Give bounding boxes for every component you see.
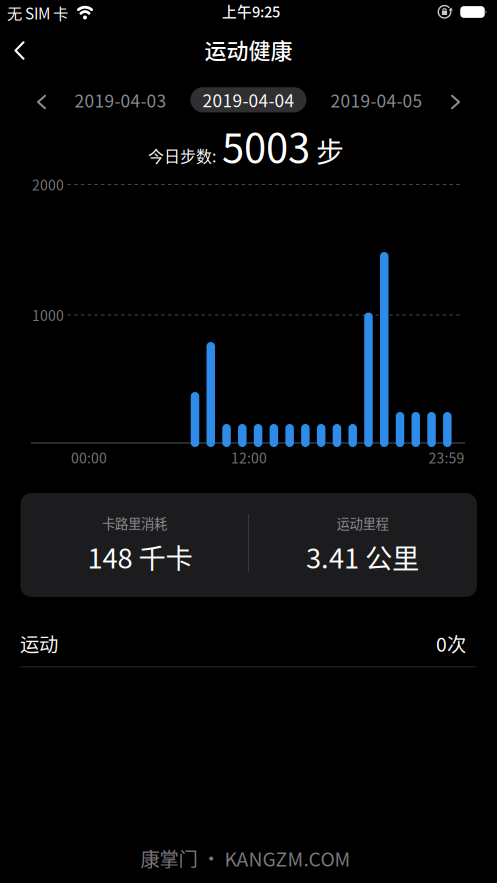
staticText: 康掌门 • KANGZM.COM bbox=[140, 844, 350, 872]
staticText: 2019-04-05 bbox=[330, 87, 422, 113]
staticText: 运动里程 bbox=[336, 513, 388, 533]
button[interactable]: Back bbox=[0, 28, 39, 72]
staticText: 上午9:25 bbox=[222, 0, 280, 22]
staticText: 无 SIM 卡 bbox=[7, 2, 68, 24]
staticText: 3.41 公里 bbox=[306, 537, 419, 576]
button[interactable]: 2019-04-05 bbox=[330, 87, 422, 113]
staticText: 2019-04-04 bbox=[202, 87, 294, 112]
staticText: 0次 bbox=[436, 629, 466, 657]
button[interactable]: Next day bbox=[435, 82, 475, 122]
button[interactable]: 2019-04-04 bbox=[190, 87, 306, 112]
staticText: 2000 bbox=[32, 174, 64, 195]
button[interactable]: 运动 bbox=[20, 621, 466, 665]
staticText: 2019-04-03 bbox=[75, 87, 167, 113]
staticText: 步 bbox=[316, 130, 344, 170]
staticText: 00:00 bbox=[71, 447, 107, 468]
button[interactable]: Previous day bbox=[21, 82, 61, 122]
staticText: 23:59 bbox=[428, 447, 464, 468]
staticText: 运动健康 bbox=[204, 33, 292, 65]
staticText: 12:00 bbox=[231, 447, 267, 468]
staticText: 今日步数: bbox=[148, 144, 216, 167]
staticText: 运动 bbox=[20, 629, 58, 657]
staticText: 卡路里消耗 bbox=[102, 513, 167, 533]
staticText: 148 千卡 bbox=[87, 537, 192, 576]
staticText: 5003 bbox=[222, 116, 310, 174]
button[interactable]: 2019-04-03 bbox=[75, 87, 167, 113]
staticText: 1000 bbox=[32, 305, 64, 325]
